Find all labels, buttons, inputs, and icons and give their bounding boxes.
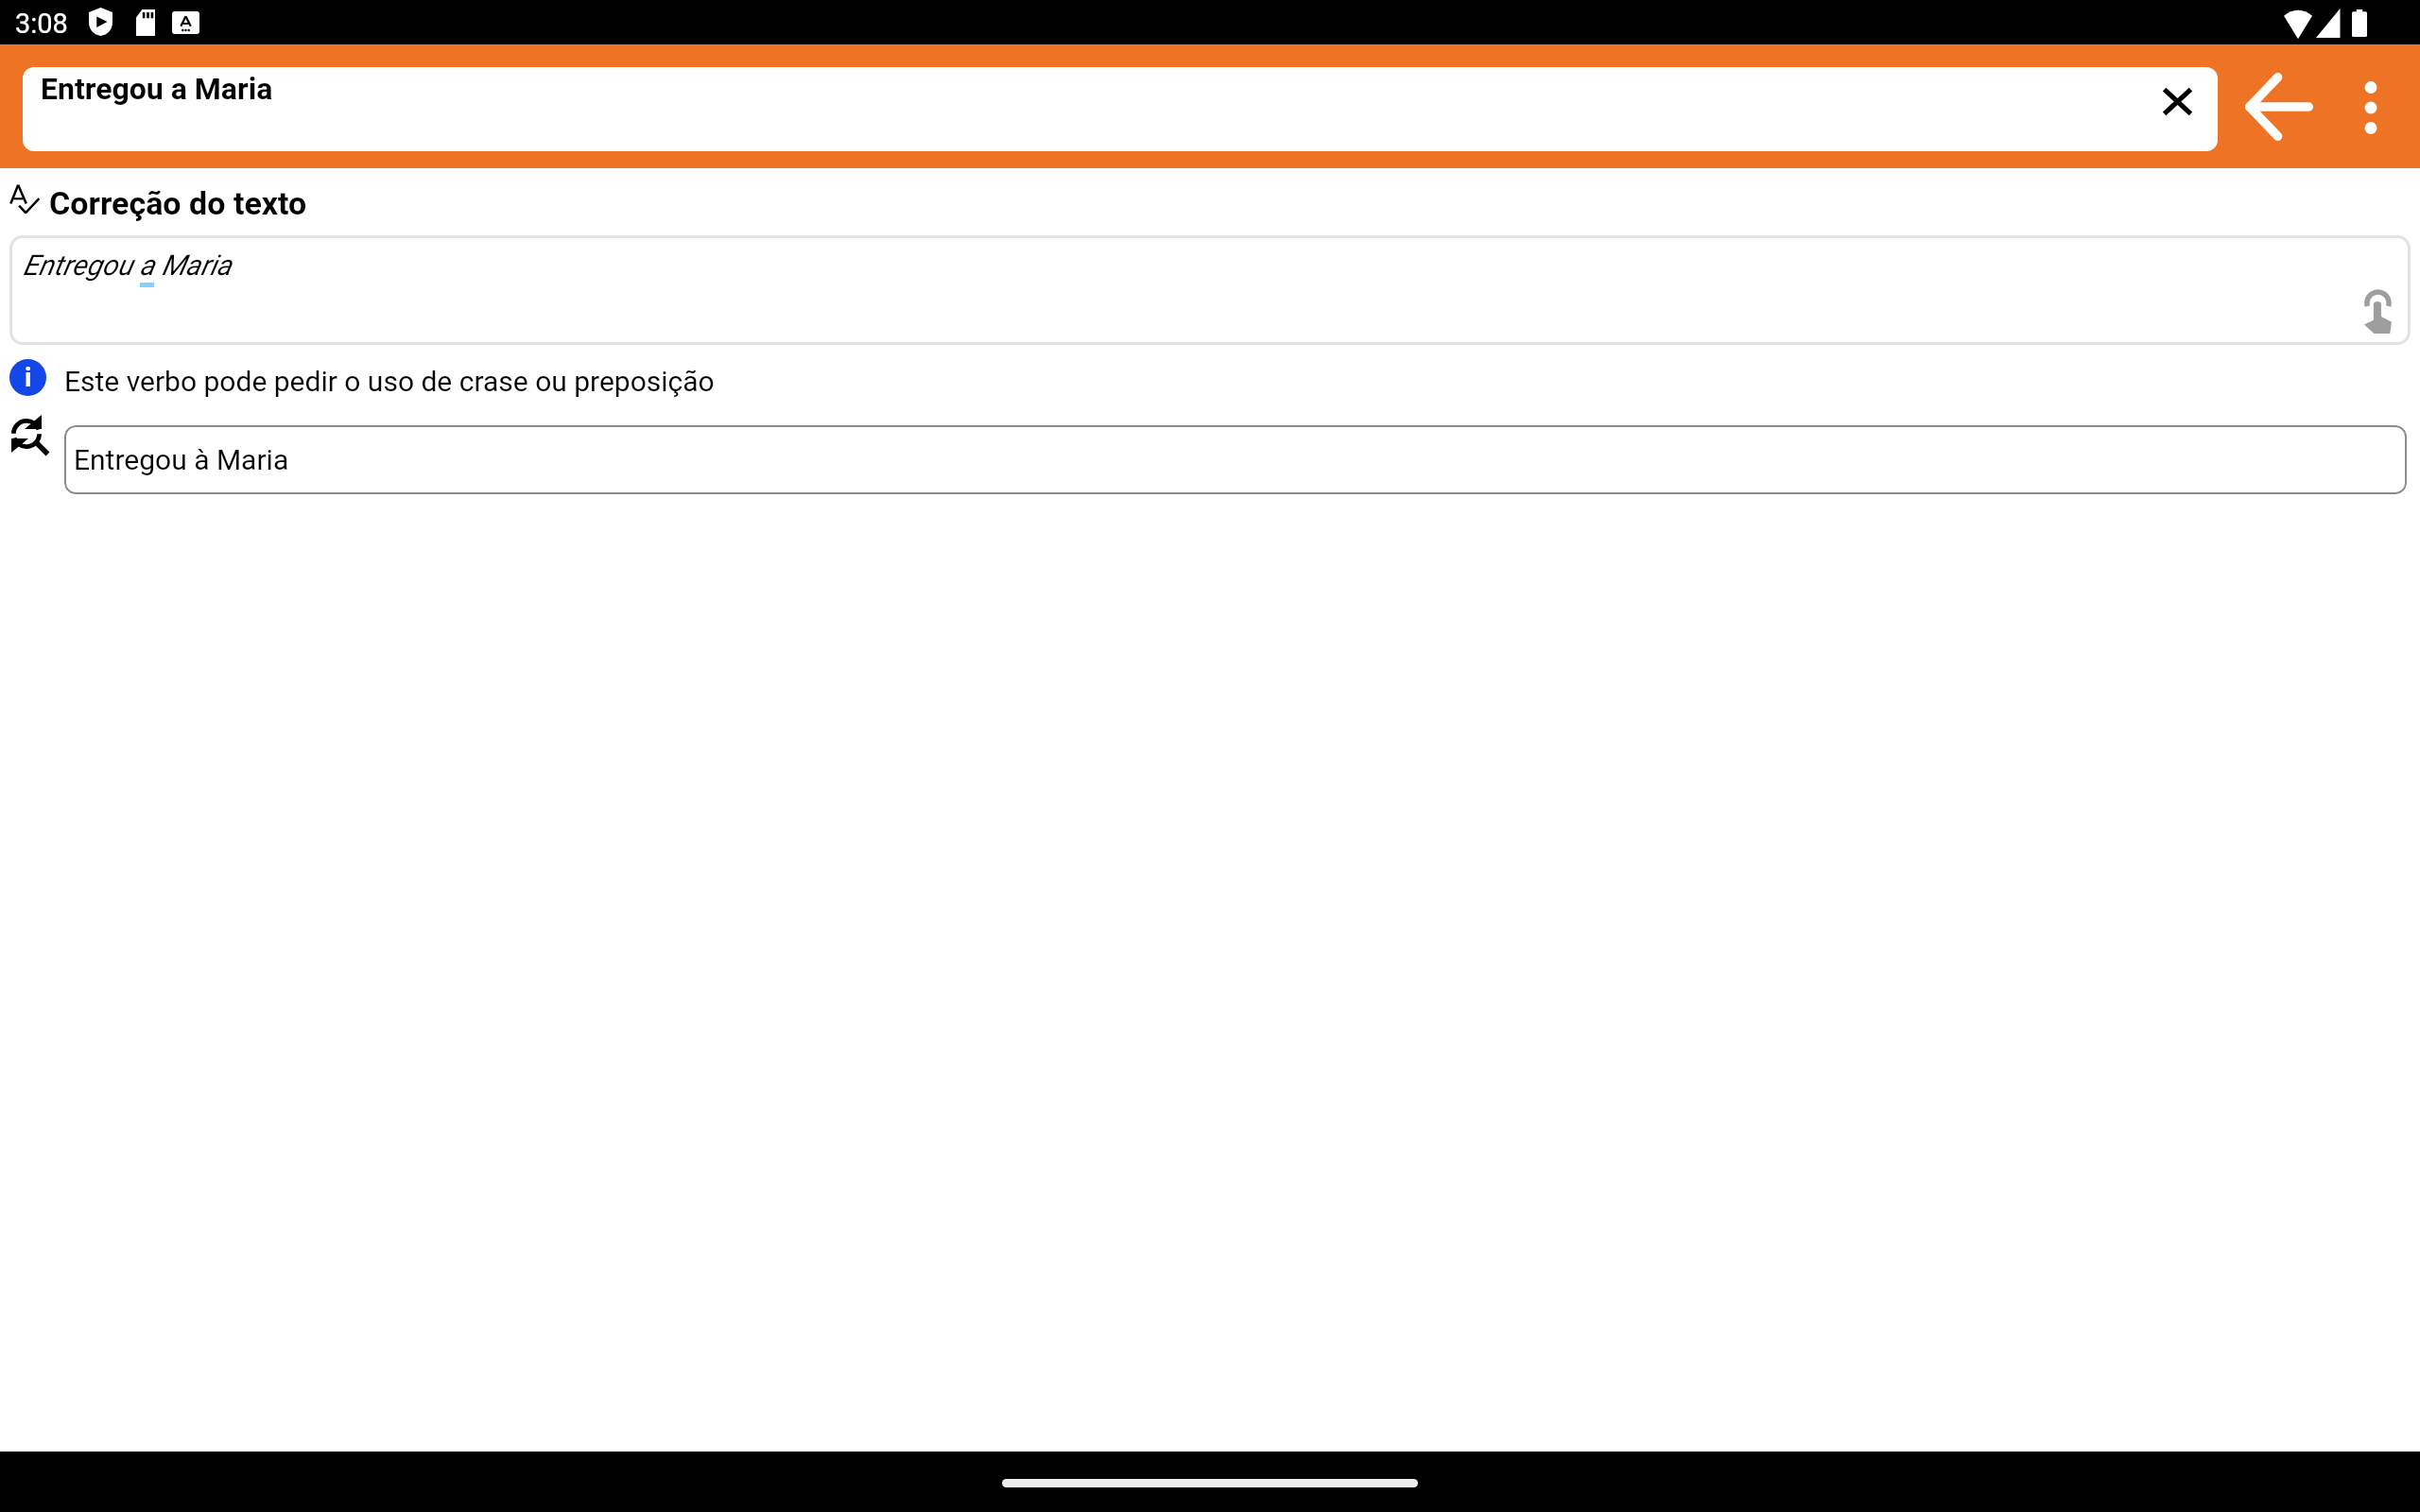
button[interactable]: Clear text [2142, 67, 2213, 137]
staticText: Entregou a Maria [41, 71, 273, 107]
button[interactable]: Entregou a Maria [9, 235, 2411, 345]
staticText: Correção do texto [49, 184, 307, 222]
button[interactable]: Entregou à Maria [64, 425, 2407, 494]
button[interactable]: Entregou a Maria [23, 67, 2218, 151]
staticText: i [25, 362, 32, 393]
button[interactable]: Back [2227, 55, 2331, 159]
staticText: 3:08 [15, 8, 68, 40]
staticText: Entregou a Maria [23, 249, 232, 282]
button[interactable]: More options [2327, 64, 2414, 151]
staticText: Este verbo pode pedir o uso de crase ou … [64, 365, 715, 398]
staticText: Entregou à Maria [74, 443, 289, 476]
